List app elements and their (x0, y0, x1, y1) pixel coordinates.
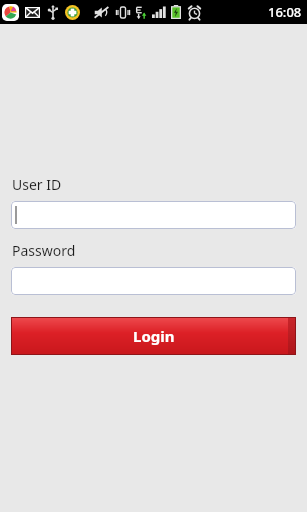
staticText: User ID (12, 175, 62, 194)
staticText: 16:08 (268, 3, 302, 21)
staticText: Login (133, 326, 175, 346)
staticText: Password (12, 241, 76, 260)
button[interactable]: Login (11, 317, 296, 355)
button[interactable]: Password input (11, 267, 296, 295)
button[interactable]: User ID input (11, 201, 296, 229)
